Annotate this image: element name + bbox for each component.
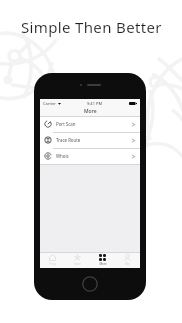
button[interactable]: More: [90, 252, 115, 268]
staticText: Ping: [49, 262, 56, 266]
staticText: Whois: [56, 153, 69, 159]
button[interactable]: Trace Route: [40, 132, 140, 148]
staticText: Carrier: [43, 101, 57, 106]
staticText: 9:41 PM: [87, 101, 103, 106]
staticText: Simple Then Better: [21, 17, 162, 37]
button[interactable]: Port Scan: [40, 116, 140, 132]
staticText: Port Scan: [56, 121, 76, 127]
staticText: Scan: [74, 262, 81, 266]
staticText: Me: [125, 262, 130, 266]
staticText: Trace Route: [56, 137, 81, 143]
button[interactable]: Scan: [65, 252, 90, 268]
button[interactable]: Ping: [40, 252, 65, 268]
staticText: More: [84, 108, 97, 115]
button[interactable]: Me: [115, 252, 140, 268]
button[interactable]: Whois: [40, 148, 140, 164]
staticText: More: [99, 262, 107, 266]
